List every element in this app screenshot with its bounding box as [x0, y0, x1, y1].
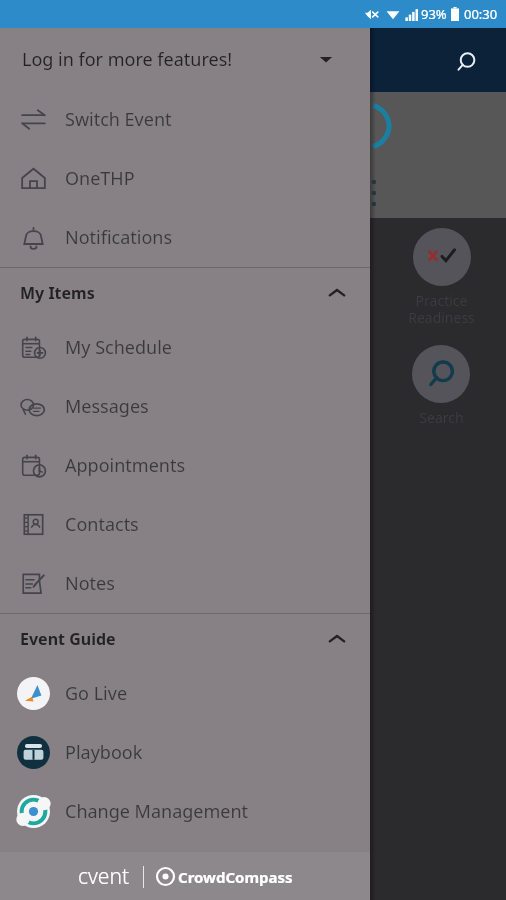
- staticText: Go Live: [65, 681, 128, 706]
- staticText: Notifications: [65, 225, 173, 250]
- staticText: 93%: [421, 5, 447, 23]
- button[interactable]: Log in for more features!: [0, 28, 370, 90]
- staticText: Practice Readiness: [408, 291, 475, 327]
- button[interactable]: My Items: [0, 268, 370, 318]
- button[interactable]: Messages: [0, 377, 370, 436]
- staticText: CrowdCompass: [178, 867, 293, 887]
- staticText: My Items: [20, 282, 95, 304]
- staticText: Contacts: [65, 512, 139, 537]
- button[interactable]: Search: [412, 343, 470, 429]
- staticText: Log in for more features!: [22, 47, 233, 72]
- staticText: cvent: [78, 862, 130, 891]
- button[interactable]: Search: [448, 44, 484, 80]
- staticText: Search: [419, 408, 464, 427]
- button[interactable]: Notifications: [0, 208, 370, 267]
- staticText: Event Guide: [20, 628, 116, 650]
- button[interactable]: Go Live: [0, 664, 370, 723]
- staticText: My Schedule: [65, 335, 172, 360]
- staticText: Switch Event: [65, 107, 172, 132]
- staticText: Appointments: [65, 453, 186, 478]
- button[interactable]: Practice Readiness: [408, 226, 475, 329]
- button[interactable]: Switch Event: [0, 90, 370, 149]
- button[interactable]: OneTHP: [0, 149, 370, 208]
- staticText: OneTHP: [65, 166, 135, 191]
- button[interactable]: Contacts: [0, 495, 370, 554]
- button[interactable]: Notes: [0, 554, 370, 613]
- staticText: Playbook: [65, 740, 143, 765]
- button[interactable]: My Schedule: [0, 318, 370, 377]
- staticText: Notes: [65, 571, 115, 596]
- button[interactable]: Playbook: [0, 723, 370, 782]
- button[interactable]: Change Management: [0, 782, 370, 841]
- staticText: 00:30: [464, 5, 498, 23]
- button[interactable]: Appointments: [0, 436, 370, 495]
- button[interactable]: Event Guide: [0, 614, 370, 664]
- staticText: Change Management: [65, 799, 249, 824]
- staticText: Messages: [65, 394, 149, 419]
